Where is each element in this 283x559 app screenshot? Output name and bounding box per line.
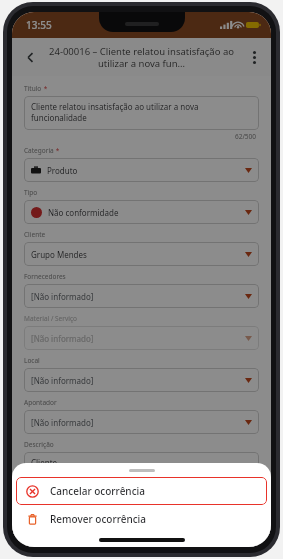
button[interactable]: [Não informado] bbox=[24, 284, 259, 308]
staticText: Título bbox=[24, 84, 42, 93]
button[interactable]: [Não informado] bbox=[24, 410, 259, 434]
button[interactable]: Remover ocorrência bbox=[16, 505, 267, 533]
staticText: 62/500 bbox=[235, 132, 257, 141]
staticText: Grupo Mendes bbox=[31, 249, 245, 260]
staticText: Descrição bbox=[24, 440, 54, 449]
button[interactable]: Voltar bbox=[16, 43, 44, 71]
staticText: [Não informado] bbox=[31, 417, 245, 428]
staticText: Remover ocorrência bbox=[50, 512, 147, 526]
button[interactable]: Cliente relatou insatisfação ao utilizar… bbox=[24, 96, 259, 130]
button[interactable]: [Não informado] bbox=[24, 368, 259, 392]
staticText: Cliente bbox=[31, 457, 58, 468]
staticText: [Não informado] bbox=[31, 333, 245, 344]
staticText: Tipo bbox=[24, 188, 38, 197]
staticText: Produto bbox=[47, 165, 245, 176]
staticText: Cliente relatou insatisfação ao utilizar… bbox=[31, 101, 252, 123]
button[interactable]: Mais opções bbox=[241, 44, 267, 70]
button[interactable]: Produto bbox=[24, 158, 259, 182]
staticText: * bbox=[54, 146, 60, 155]
staticText: Categoria bbox=[24, 146, 54, 155]
button[interactable]: Cancelar ocorrência bbox=[16, 477, 267, 505]
staticText: Cancelar ocorrência bbox=[50, 484, 145, 498]
staticText: Cliente bbox=[24, 230, 46, 239]
staticText: Fornecedores bbox=[24, 272, 66, 281]
staticText: 24-00016 – Cliente relatou insatisfação … bbox=[44, 45, 239, 70]
staticText: Não conformidade bbox=[48, 207, 245, 218]
staticText: [Não informado] bbox=[31, 291, 245, 302]
button[interactable]: Cliente bbox=[24, 452, 259, 482]
button[interactable]: Não conformidade bbox=[24, 200, 259, 224]
staticText: * bbox=[42, 84, 48, 93]
staticText: [Não informado] bbox=[31, 375, 245, 386]
button[interactable]: [Não informado] bbox=[24, 326, 259, 350]
staticText: 13:55 bbox=[26, 18, 52, 32]
staticText: Local bbox=[24, 356, 40, 365]
button[interactable]: Grupo Mendes bbox=[24, 242, 259, 266]
staticText: Apontador bbox=[24, 398, 57, 407]
staticText: Material / Serviço bbox=[24, 314, 77, 323]
